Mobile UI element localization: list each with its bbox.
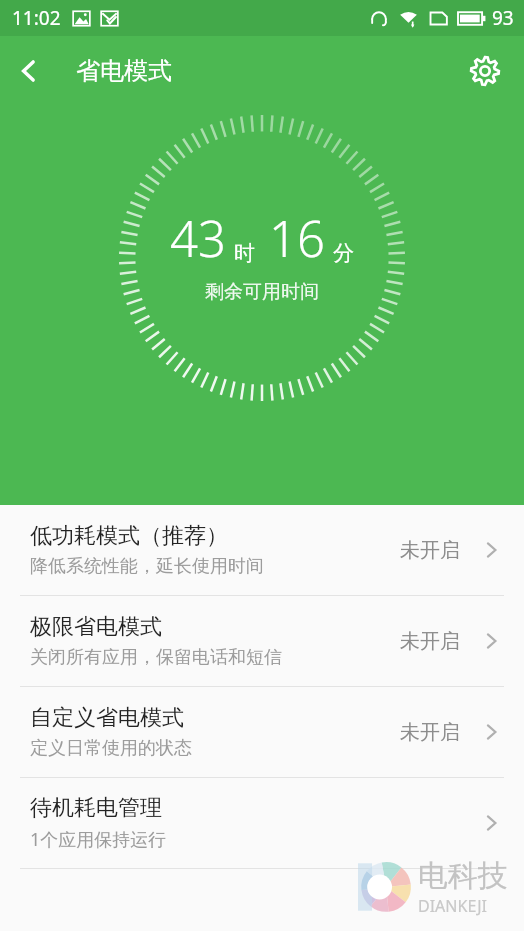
button[interactable]: Settings (458, 44, 512, 98)
button[interactable]: 极限省电模式 (0, 596, 524, 686)
staticText: DIANKEJI (418, 895, 488, 917)
staticText: 未开启 (400, 629, 460, 654)
staticText: 分 (333, 240, 354, 266)
staticText: 极限省电模式 (30, 613, 162, 641)
staticText: 关闭所有应用，保留电话和短信 (30, 646, 282, 669)
button[interactable]: 待机耗电管理 (0, 778, 524, 868)
staticText: 省电模式 (76, 56, 172, 86)
staticText: 16 (269, 205, 325, 272)
staticText: 43 (170, 205, 226, 272)
staticText: 降低系统性能，延长使用时间 (30, 555, 264, 578)
button[interactable]: 低功耗模式（推荐） (0, 505, 524, 595)
staticText: 待机耗电管理 (30, 794, 162, 822)
staticText: 定义日常使用的状态 (30, 737, 192, 760)
staticText: 未开启 (400, 720, 460, 745)
staticText: 时 (234, 240, 255, 266)
button[interactable]: Back (0, 42, 58, 100)
staticText: 11:02 (12, 5, 61, 31)
staticText: 低功耗模式（推荐） (30, 522, 228, 550)
staticText: 93 (492, 5, 514, 31)
staticText: 剩余可用时间 (205, 280, 319, 304)
staticText: 自定义省电模式 (30, 704, 184, 732)
staticText: 1个应用保持运行 (30, 827, 167, 852)
button[interactable]: 自定义省电模式 (0, 687, 524, 777)
staticText: 未开启 (400, 538, 460, 563)
staticText: 电科技 (418, 857, 508, 895)
